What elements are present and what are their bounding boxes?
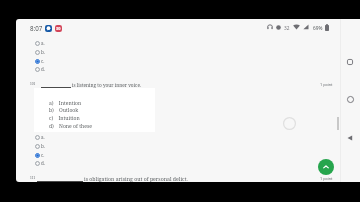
staticText: c.: [41, 58, 45, 64]
staticText: c) Intuition: [49, 115, 80, 122]
staticText: b.: [41, 143, 45, 149]
button[interactable]: Home: [342, 91, 358, 107]
button[interactable]: b.: [35, 142, 45, 150]
staticText: 69%: [313, 25, 323, 32]
staticText: 101: [30, 82, 36, 86]
button[interactable]: Scroll to top: [318, 159, 334, 175]
staticText: 1 point: [320, 176, 333, 181]
staticText: d.: [41, 66, 45, 72]
staticText: a) Intention: [49, 100, 82, 107]
staticText: 1 point: [320, 82, 333, 87]
staticText: a.: [41, 40, 45, 46]
button[interactable]: b.: [35, 48, 45, 56]
staticText: is listening to your inner voice.: [72, 82, 142, 88]
staticText: 111: [30, 176, 36, 180]
staticText: 30: [56, 26, 61, 31]
staticText: a.: [41, 134, 45, 140]
staticText: d.: [41, 160, 45, 166]
staticText: d) None of these: [49, 123, 92, 130]
staticText: c.: [41, 152, 45, 158]
staticText: b) Outlook: [49, 107, 79, 114]
button[interactable]: a.: [35, 39, 45, 47]
button[interactable]: c.: [35, 57, 45, 65]
button[interactable]: d.: [35, 159, 45, 167]
staticText: 8:07: [30, 24, 43, 32]
staticText: 32: [284, 25, 290, 32]
staticText: is obligation arising out of personal de…: [84, 175, 188, 182]
staticText: b.: [41, 49, 45, 55]
button[interactable]: Recent apps: [342, 54, 358, 70]
button[interactable]: Back: [342, 130, 358, 146]
button[interactable]: d.: [35, 65, 45, 73]
button[interactable]: c.: [35, 151, 45, 159]
button[interactable]: a.: [35, 133, 45, 141]
